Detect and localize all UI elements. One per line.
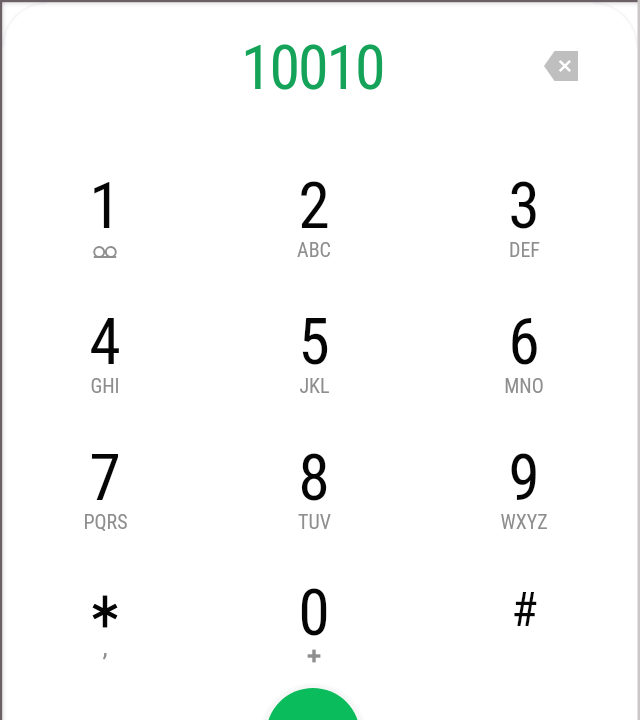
staticText: ,: [102, 632, 108, 662]
staticText: GHI: [90, 374, 120, 397]
staticText: 9: [508, 441, 540, 516]
staticText: DEF: [509, 238, 540, 261]
staticText: PQRS: [83, 510, 128, 533]
button[interactable]: 7 PQRS: [17, 445, 193, 563]
button[interactable]: 6 MNO: [436, 309, 612, 427]
staticText: WXYZ: [500, 510, 548, 533]
button[interactable]: 2 ABC: [226, 173, 402, 291]
staticText: 0: [298, 576, 330, 651]
button[interactable]: 0 plus: [226, 580, 402, 698]
staticText: MNO: [504, 374, 544, 397]
staticText: 5: [298, 305, 330, 380]
button[interactable]: 8 TUV: [226, 445, 402, 563]
button[interactable]: Star key: [17, 580, 193, 698]
button[interactable]: 10010: [192, 31, 433, 97]
staticText: 10010: [241, 31, 384, 97]
button[interactable]: 4 GHI: [17, 309, 193, 427]
staticText: 6: [508, 305, 540, 380]
staticText: 7: [89, 441, 121, 516]
button[interactable]: 1 voicemail: [17, 173, 193, 291]
staticText: 8: [298, 441, 330, 516]
staticText: 1: [89, 169, 121, 244]
staticText: 4: [89, 305, 121, 380]
staticText: TUV: [298, 510, 331, 533]
staticText: #: [511, 581, 538, 637]
button[interactable]: 5 JKL: [226, 309, 402, 427]
staticText: 2: [298, 169, 330, 244]
staticText: JKL: [299, 374, 330, 397]
staticText: 3: [508, 169, 540, 244]
button[interactable]: Pound key: [436, 580, 612, 698]
button[interactable]: Backspace, delete last digit: [533, 38, 589, 94]
button[interactable]: 3 DEF: [436, 173, 612, 291]
button[interactable]: Call: [266, 688, 360, 720]
staticText: ABC: [297, 238, 331, 261]
button[interactable]: 9 WXYZ: [436, 445, 612, 563]
